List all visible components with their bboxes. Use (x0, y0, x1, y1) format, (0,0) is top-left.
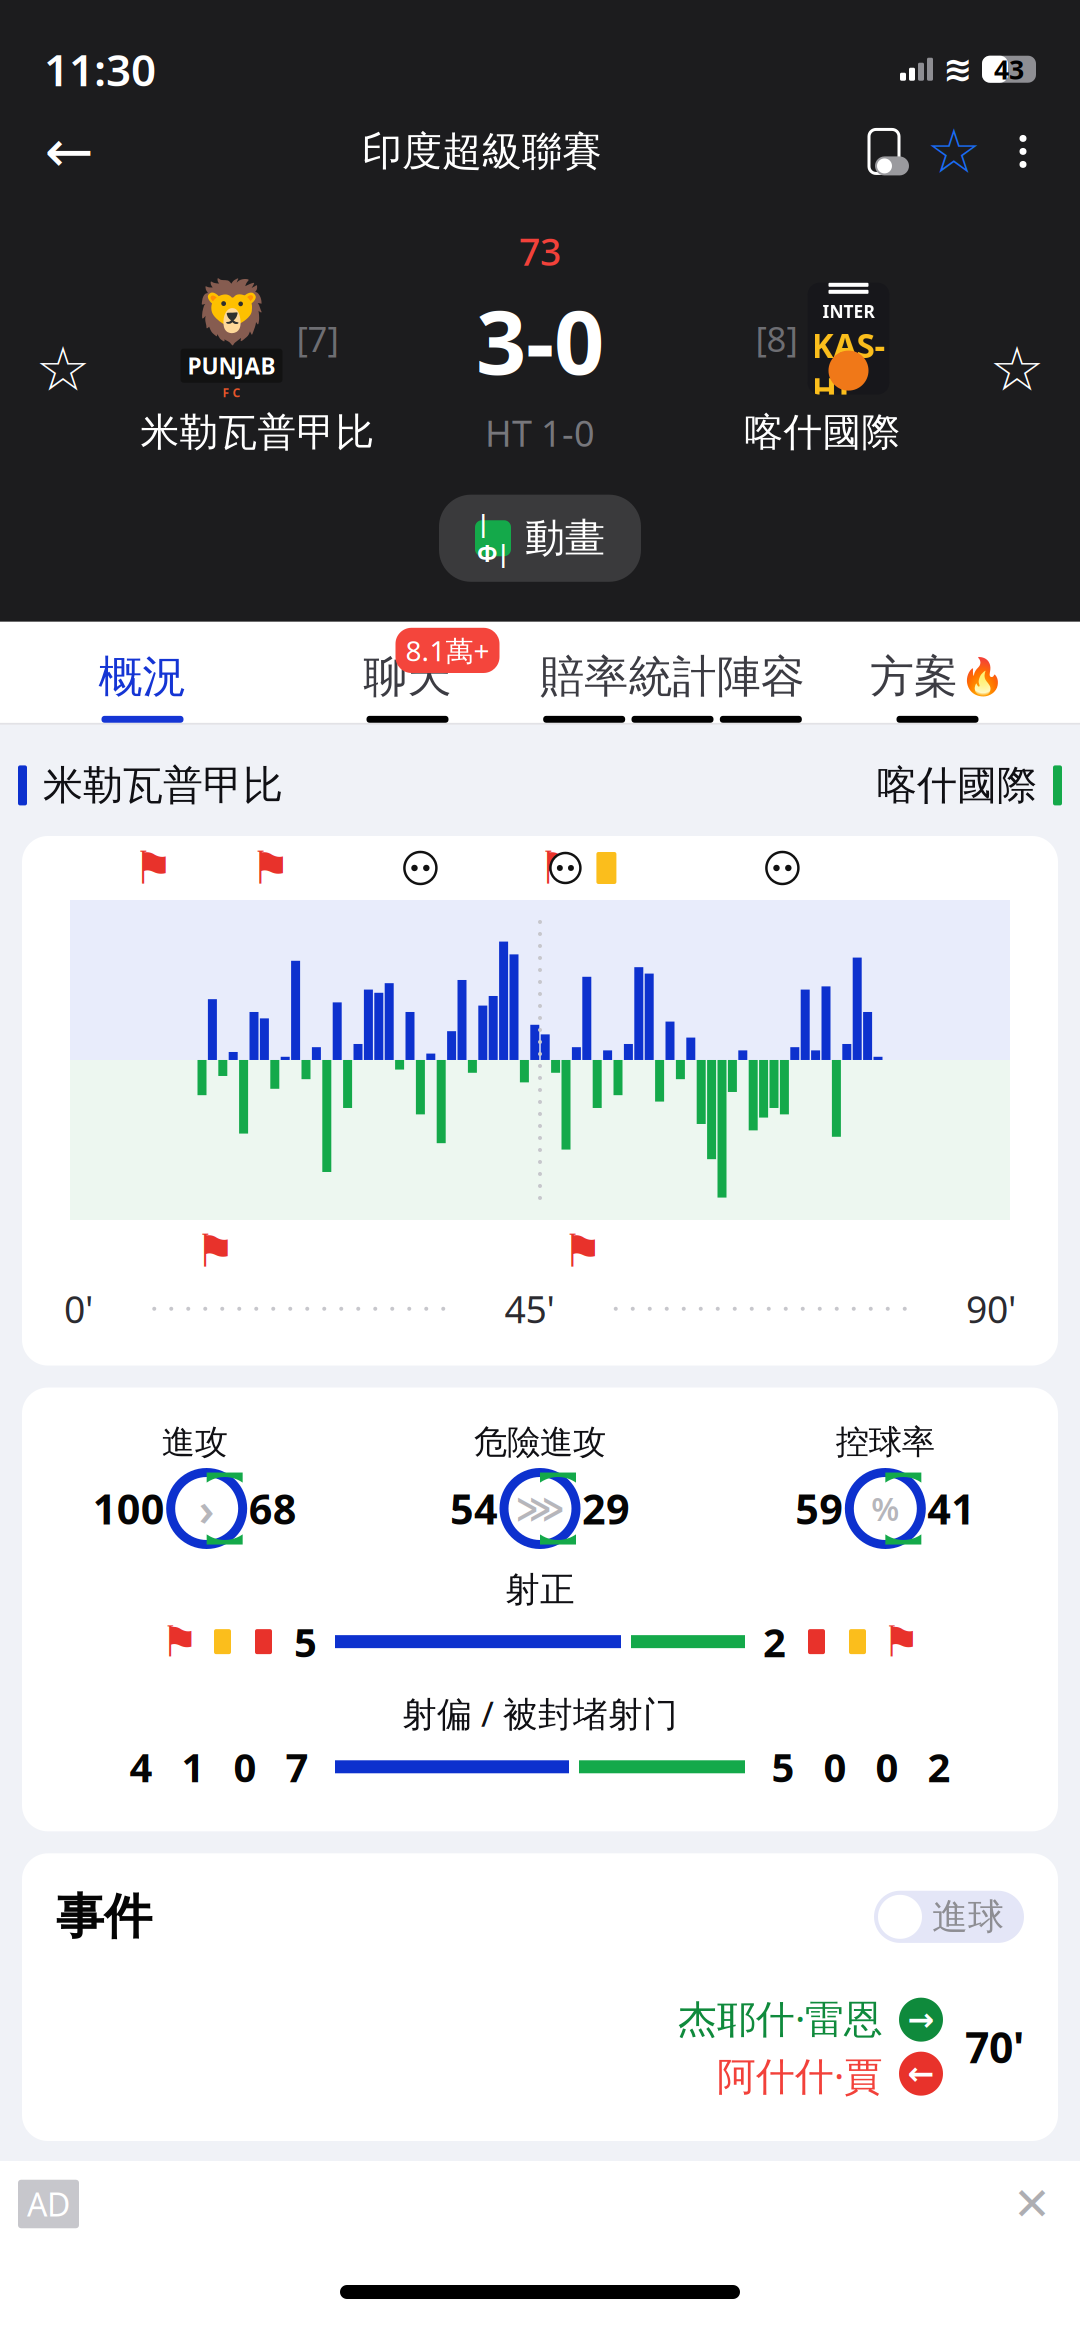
staticText: ⚑ (882, 1617, 920, 1666)
staticText: 1 (181, 1740, 204, 1793)
button[interactable]: 概況 (10, 622, 275, 723)
button[interactable]: 進球 (874, 1891, 1024, 1943)
button[interactable]: |Φ| (439, 495, 641, 582)
button[interactable]: 賠率 (540, 622, 628, 723)
staticText: 70' (965, 2018, 1024, 2075)
staticText: 杰耶什·雷恩 (678, 1992, 883, 2044)
button[interactable]: 統計 (628, 622, 717, 723)
staticText: 2 (763, 1615, 786, 1668)
button[interactable]: More options (996, 123, 1050, 179)
staticText: 5 (771, 1740, 794, 1793)
staticText: 射偏 / 被封堵射门 (402, 1690, 678, 1736)
staticText: 54 (450, 1481, 498, 1536)
staticText: ☆ (35, 334, 90, 404)
staticText: % (871, 1487, 899, 1530)
staticText: 100 (93, 1481, 165, 1536)
staticText: 印度超級聯賽 (362, 127, 602, 176)
button[interactable]: Favorite home team (26, 332, 100, 406)
staticText: PUNJAB (187, 351, 275, 381)
staticText: [7] (296, 316, 338, 362)
staticText: ☆ (926, 117, 981, 186)
staticText: 控球率 (836, 1422, 935, 1462)
staticText: 喀什國際 (877, 761, 1037, 810)
staticText: 4 (129, 1740, 152, 1793)
staticText: ⚑ (195, 1225, 236, 1277)
staticText: › (199, 1478, 215, 1539)
staticText: INTER (822, 300, 874, 323)
staticText: 進攻 (162, 1422, 228, 1462)
button[interactable]: 聊天 (275, 622, 540, 723)
staticText: 68 (249, 1481, 297, 1536)
staticText: → (907, 2001, 934, 2038)
staticText: ⋙ (515, 1489, 564, 1528)
staticText: 59 (795, 1481, 843, 1536)
staticText: 0 (823, 1740, 846, 1793)
staticText: 喀什國際 (744, 409, 900, 456)
staticText: 方案 (870, 650, 958, 704)
staticText: 0' (64, 1284, 93, 1334)
staticText: 米勒瓦普甲比 (43, 761, 283, 810)
staticText: ⚑ (562, 1225, 603, 1277)
staticText: ← (44, 118, 93, 185)
staticText: 陣容 (717, 650, 805, 704)
staticText: ⚑ (133, 842, 174, 894)
button[interactable]: Favorite (926, 123, 982, 179)
staticText: 動畫 (525, 514, 605, 563)
staticText: ≋ (943, 49, 972, 89)
staticText: 11:30 (44, 40, 156, 98)
staticText: HT 1-0 (485, 409, 595, 457)
button[interactable]: 方案 (805, 622, 1070, 723)
staticText: AD (27, 2183, 70, 2225)
staticText: ← (907, 2055, 934, 2092)
staticText: 0 (233, 1740, 256, 1793)
staticText: 29 (582, 1481, 630, 1536)
staticText: 概況 (98, 650, 186, 704)
staticText: 90' (966, 1284, 1016, 1334)
staticText: 73 (519, 226, 561, 276)
staticText: 8.1萬+ (405, 632, 489, 669)
staticText: 阿什什·賈 (717, 2050, 883, 2101)
staticText: 危險進攻 (474, 1422, 606, 1462)
button[interactable]: Notifications (856, 123, 912, 179)
staticText: 43 (994, 51, 1024, 87)
button[interactable]: 陣容 (717, 622, 805, 723)
staticText: 7 (285, 1740, 308, 1793)
button[interactable]: Back (30, 112, 108, 190)
staticText: 賠率 (540, 650, 628, 704)
staticText: 射正 (505, 1568, 575, 1611)
staticText: 🔥 (960, 656, 1005, 697)
staticText: ☆ (989, 334, 1044, 404)
staticText: |Φ| (477, 508, 509, 568)
staticText: 45' (504, 1284, 554, 1334)
staticText: ⚑ (250, 842, 291, 894)
staticText: 事件 (56, 1887, 152, 1946)
staticText: ⚑ (538, 842, 579, 894)
staticText: [8] (755, 316, 797, 362)
staticText: F C (222, 385, 240, 401)
button[interactable]: Close ad (1002, 2174, 1062, 2234)
staticText: 41 (927, 1481, 975, 1536)
staticText: 米勒瓦普甲比 (140, 409, 374, 456)
staticText: 5 (294, 1615, 317, 1668)
staticText: 3-0 (476, 282, 604, 399)
staticText: KASHI (811, 323, 885, 411)
staticText: 0 (875, 1740, 898, 1793)
staticText: 2 (927, 1740, 950, 1793)
staticText: 聊天 (363, 650, 451, 704)
staticText: 統計 (628, 650, 716, 704)
staticText: 進球 (932, 1895, 1004, 1939)
button[interactable]: Favorite away team (980, 332, 1054, 406)
staticText: ✕ (1013, 2178, 1051, 2230)
staticText: 🦁 (193, 276, 269, 347)
staticText: ⚑ (160, 1617, 198, 1666)
